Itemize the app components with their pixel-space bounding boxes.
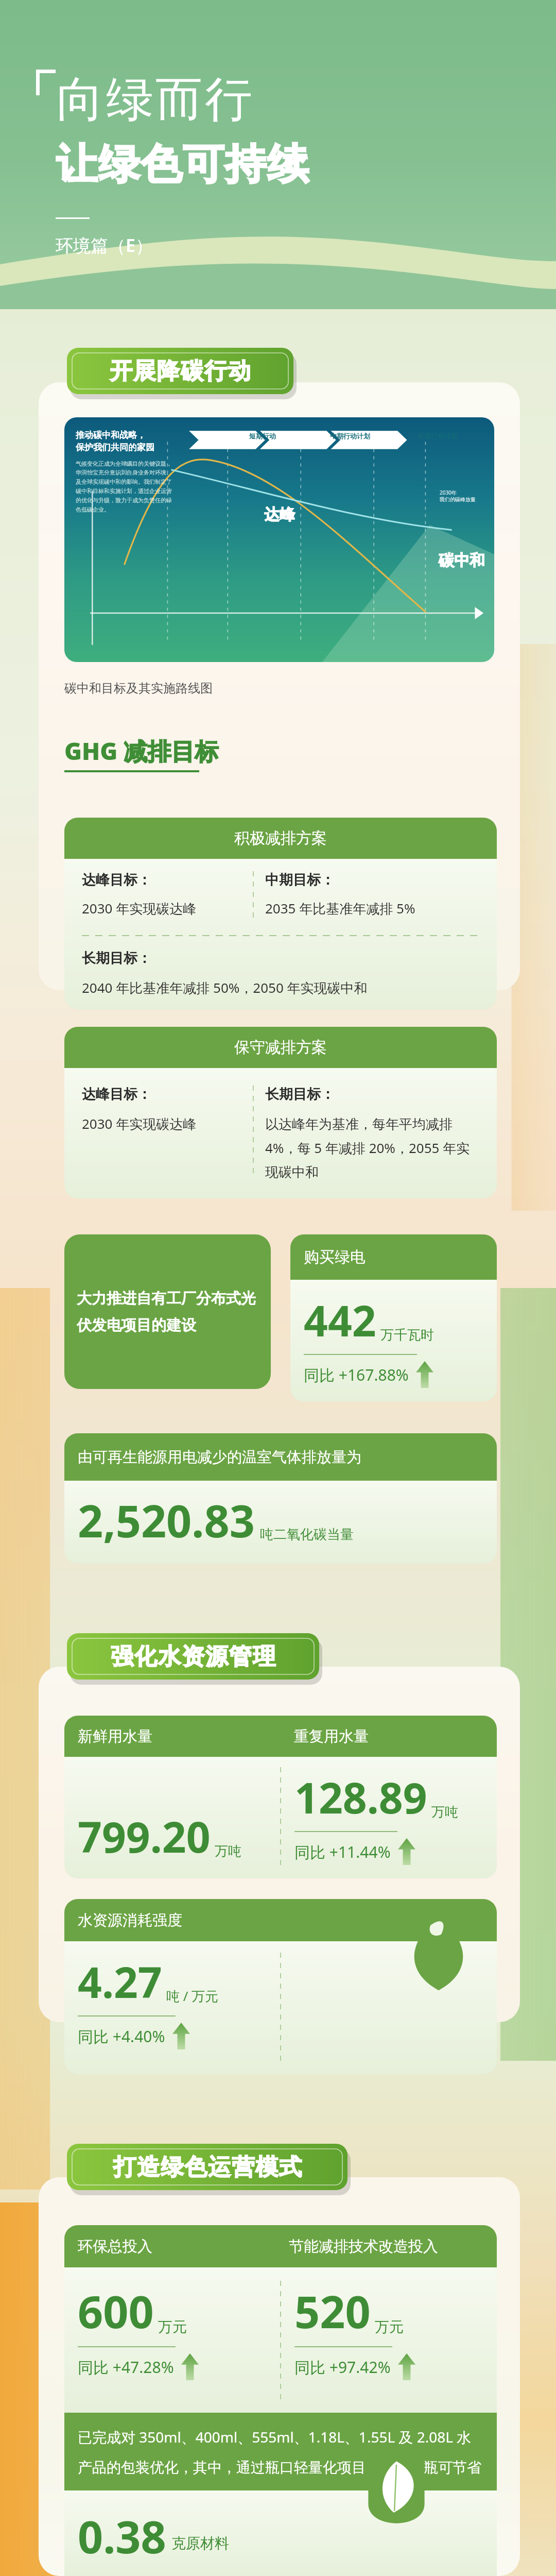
button[interactable]: 强化水资源管理 [67,1633,319,1680]
staticText: 环境篇（E） [56,233,153,257]
staticText: 2040 年比基准年减排 50%，2050 年实现碳中和 [82,978,368,997]
staticText: 长期目标： [82,950,151,967]
button[interactable]: 购买绿电 [290,1234,497,1401]
staticText: 吨二氧化碳当量 [260,1526,354,1543]
staticText: 已完成对 350ml、400ml、555ml、1.18L、1.55L 及 2.0… [78,2427,483,2477]
staticText: 长期行动计划 [418,432,458,440]
staticText: 同比 +47.28% [78,2357,174,2378]
staticText: 保守减排方案 [234,1038,327,1057]
staticText: 新鲜用水量 [78,1727,152,1746]
staticText: 万元 [158,2318,187,2336]
staticText: 442 [304,1291,376,1349]
other: Increase [181,2353,199,2380]
staticText: 799.20 [78,1807,211,1865]
button[interactable]: 新鲜用水量 [64,1716,497,1878]
staticText: 碳中和 [439,551,485,570]
staticText: 向绿而行 [56,70,253,129]
staticText: 4.27 [78,1953,162,2010]
other: Increase [398,1838,415,1865]
staticText: 气候变化正成为全球瞩目的关键议题， 华润怡宝充分意识到自身业务对环境、 及全球实… [76,460,172,514]
button[interactable]: 由可再生能源用电减少的温室气体排放量为 [64,1433,497,1564]
staticText: 中期行动计划 [330,432,370,440]
staticText: 购买绿电 [304,1247,366,1267]
other: Increase [398,2353,415,2380]
staticText: 节能减排技术改造投入 [289,2237,438,2256]
staticText: 同比 +167.88% [304,1364,409,1385]
staticText: 同比 +11.44% [294,1841,391,1862]
staticText: 2,520.83 [78,1490,255,1550]
staticText: 重复用水量 [294,1727,369,1746]
staticText: 600 [78,2281,154,2341]
staticText: 128.89 [294,1768,427,1826]
other: Leaf [363,2460,430,2545]
staticText: 积极减排方案 [234,828,327,848]
staticText: 达峰 [264,505,295,524]
staticText: 开展降碳行动 [109,357,251,385]
staticText: 吨 / 万元 [166,1987,219,2005]
staticText: 推动碳中和战略， 保护我们共同的家园 [76,430,154,453]
staticText: 打造绿色运营模式 [113,2153,302,2181]
other: Increase [416,1361,433,1388]
staticText: 以达峰年为基准，每年平均减排 4%，每 5 年减排 20%，2055 年实现碳中… [265,1114,479,1181]
staticText: 同比 +4.40% [78,2026,165,2047]
button[interactable]: 开展降碳行动 [67,348,293,394]
staticText: 达峰目标： [82,1086,151,1103]
staticText: 2030年 我们的碳峰放量 [440,489,476,503]
button[interactable]: 打造绿色运营模式 [67,2144,347,2190]
staticText: GHG 减排目标 [64,735,219,767]
staticText: 同比 +97.42% [294,2357,391,2378]
staticText: 2030 年实现碳达峰 [82,899,197,918]
staticText: 0.38 [78,2506,166,2558]
staticText: 达峰目标： [82,871,151,889]
other: Water drop [405,1914,472,1997]
staticText: 万千瓦时 [380,1327,434,1344]
staticText: 水资源消耗强度 [78,1911,182,1930]
staticText: 2030 年实现碳达峰 [82,1114,197,1133]
staticText: 让绿色可持续 [56,139,309,191]
staticText: 中期目标： [265,871,335,889]
other: Increase [172,2023,190,2049]
staticText: 克原材料 [171,2534,229,2552]
staticText: 环保总投入 [78,2237,152,2256]
staticText: 万吨 [431,1804,458,1821]
staticText: 强化水资源管理 [110,1642,276,1671]
staticText: 大力推进自有工厂分布式光伏发电项目的建设 [77,1289,258,1334]
staticText: 长期目标： [265,1086,335,1103]
button[interactable]: 大力推进自有工厂分布式光伏发电项目的建设 [64,1234,271,1389]
staticText: 由可再生能源用电减少的温室气体排放量为 [78,1448,361,1467]
staticText: 万吨 [215,1843,241,1860]
staticText: 万元 [375,2318,404,2336]
staticText: 碳中和目标及其实施路线图 [64,681,213,696]
button[interactable]: 环保总投入 [64,2225,497,2576]
staticText: 520 [294,2281,371,2341]
staticText: 2035 年比基准年减排 5% [265,899,415,918]
staticText: 短期行动 [249,432,276,440]
button[interactable]: 水资源消耗强度 [64,1899,497,2074]
